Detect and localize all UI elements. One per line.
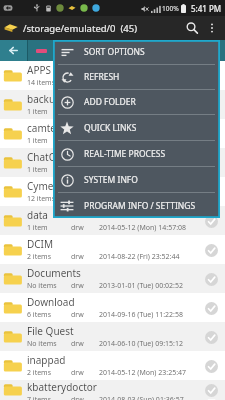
staticText: /storage/emulated/0 (45) [23, 22, 138, 35]
button[interactable]: Select Cymera [201, 182, 221, 202]
staticText: APPS [27, 63, 51, 77]
button[interactable] [28, 40, 225, 61]
button[interactable]: Select data [201, 211, 221, 231]
staticText: Cymera [27, 179, 63, 193]
staticText: 1 item [27, 165, 48, 175]
button[interactable]: Select File Quest [201, 327, 221, 347]
staticText: 1 item [27, 136, 48, 146]
button[interactable]: Select DCIM [201, 240, 221, 260]
staticText: 1 item [27, 223, 48, 233]
staticText: 2014-09-18 (Thu) 10:11:02 [99, 78, 184, 88]
staticText: drw [71, 78, 84, 88]
staticText: REFRESH [84, 71, 120, 83]
staticText: File Quest [27, 324, 74, 338]
staticText: drw [71, 252, 84, 262]
button[interactable]: Select ChatON [201, 153, 221, 173]
staticText: drw [71, 107, 84, 117]
staticText: 2014-03-11 (Tue) 12:20:31 [99, 165, 183, 175]
button[interactable]: DCIM [0, 235, 225, 264]
staticText: drw [71, 281, 84, 291]
staticText: drw [71, 165, 84, 175]
staticText: kbatterydoctor [27, 380, 97, 394]
staticText: QUICK LINKS [84, 122, 137, 134]
button[interactable]: Select APPS [201, 66, 221, 86]
staticText: inappad [27, 353, 66, 367]
button[interactable]: ADD FOLDER [53, 90, 220, 114]
button[interactable]: inappad [0, 351, 225, 380]
staticText: 6 items [27, 310, 52, 320]
staticText: drw [71, 368, 84, 378]
button[interactable]: Search [181, 17, 203, 39]
staticText: DCIM [27, 237, 54, 251]
button[interactable]: kbatterydoctor [0, 380, 225, 400]
staticText: drw [71, 136, 84, 146]
staticText: 2014-08-22 (Fri) 23:52:44 [99, 252, 180, 262]
staticText: 2014-08-09 (Sat) 16:45:09 [99, 194, 182, 204]
button[interactable]: PROGRAM INFO / SETTINGS [53, 193, 220, 218]
button[interactable]: data [0, 206, 225, 235]
staticText: 2014-05-21 (Wed) 19:04:55 [99, 136, 186, 146]
staticText: ADD FOLDER [84, 96, 136, 108]
button[interactable]: ChatON [0, 148, 225, 177]
staticText: 2014-05-12 (Mon) 23:25:47 [99, 368, 187, 378]
staticText: drw [71, 223, 84, 233]
staticText: backup [27, 92, 62, 106]
staticText: 100% [162, 4, 179, 13]
staticText: 2013-01-01 (Tue) 00:02:52 [99, 281, 183, 291]
staticText: 2 items [27, 252, 52, 262]
button[interactable]: Select backup [201, 95, 221, 115]
staticText: REAL-TIME PROCESS [84, 148, 166, 160]
staticText: drw [71, 395, 84, 400]
staticText: 2014-06-10 (Tue) 09:15:12 [99, 339, 183, 349]
button[interactable]: Select camtest [201, 124, 221, 144]
staticText: SORT OPTIONS [84, 46, 145, 58]
button[interactable]: Select inappad [201, 356, 221, 376]
staticText: Documents [27, 266, 81, 280]
staticText: 2014-08-03 (Sun) 01:36:57 [99, 395, 184, 400]
button[interactable]: REFRESH [53, 65, 220, 89]
staticText: 2014-05-12 (Mon) 14:57:08 [99, 223, 187, 233]
button[interactable]: Select kbatterydoctor [201, 380, 221, 400]
button[interactable]: More options [203, 19, 221, 37]
button[interactable]: Download [0, 293, 225, 322]
staticText: 1 item [27, 107, 48, 117]
staticText: 12 items [27, 194, 56, 204]
staticText: 5:41 PM [191, 3, 222, 14]
staticText: No items [27, 281, 57, 291]
button[interactable]: QUICK LINKS [53, 115, 220, 140]
staticText: 14 items [27, 78, 56, 88]
staticText: drw [71, 194, 84, 204]
staticText: PROGRAM INFO / SETTINGS [84, 200, 196, 212]
staticText: 2014-07-02 (Wed) 08:33:10 [99, 107, 186, 117]
staticText: 2 items [27, 368, 52, 378]
staticText: 7 items [27, 395, 52, 400]
staticText: drw [71, 339, 84, 349]
staticText: drw [71, 310, 84, 320]
button[interactable]: Cymera [0, 177, 225, 206]
staticText: No items [27, 339, 57, 349]
button[interactable]: REAL-TIME PROCESS [53, 141, 220, 166]
staticText: camtest [27, 121, 65, 135]
staticText: data [27, 208, 48, 222]
staticText: 2014-09-16 (Tue) 11:22:58 [99, 310, 183, 320]
button[interactable]: Back [0, 40, 27, 61]
button[interactable]: backup [0, 90, 225, 119]
button[interactable]: SORT OPTIONS [53, 40, 220, 64]
button[interactable]: SYSTEM INFO [53, 167, 220, 192]
button[interactable]: camtest [0, 119, 225, 148]
button[interactable]: Select Download [201, 298, 221, 318]
staticText: SYSTEM INFO [84, 174, 138, 186]
staticText: ChatON [27, 150, 65, 164]
staticText: Download [27, 295, 75, 309]
button[interactable]: Documents [0, 264, 225, 293]
button[interactable]: Select Documents [201, 269, 221, 289]
button[interactable]: File Quest [0, 322, 225, 351]
button[interactable]: APPS [0, 61, 225, 90]
